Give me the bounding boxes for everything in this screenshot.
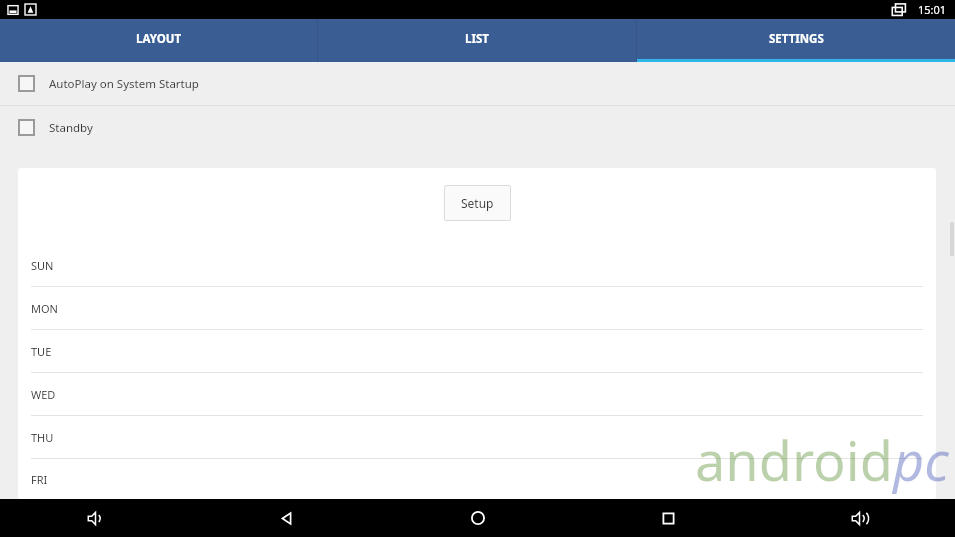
staticText: MON xyxy=(31,301,58,316)
button[interactable]: Home xyxy=(382,499,573,537)
staticText: LAYOUT xyxy=(136,31,182,47)
staticText: AutoPlay on System Startup xyxy=(49,76,199,92)
button[interactable]: SETTINGS xyxy=(637,19,955,62)
button[interactable]: Volume down xyxy=(0,499,191,537)
button[interactable]: FRI xyxy=(18,459,936,499)
button[interactable]: MON xyxy=(18,287,936,329)
button[interactable]: WED xyxy=(18,373,936,415)
staticText: android xyxy=(695,423,893,497)
staticText: Standby xyxy=(49,120,93,136)
staticText: SUN xyxy=(31,258,54,273)
staticText: FRI xyxy=(31,472,48,487)
button[interactable]: SUN xyxy=(18,244,936,286)
button[interactable]: TUE xyxy=(18,330,936,372)
button[interactable]: THU xyxy=(18,416,936,458)
staticText: Setup xyxy=(461,195,494,211)
staticText: LIST xyxy=(465,31,489,47)
button[interactable]: LAYOUT xyxy=(0,19,317,62)
button[interactable]: LIST xyxy=(318,19,636,62)
button[interactable]: Volume up xyxy=(764,499,955,537)
button[interactable]: AutoPlay on System Startup xyxy=(0,62,955,105)
staticText: TUE xyxy=(31,344,52,359)
staticText: pc xyxy=(893,423,949,497)
button[interactable]: Recents xyxy=(573,499,764,537)
staticText: THU xyxy=(31,430,54,445)
button[interactable]: Setup xyxy=(444,185,511,221)
staticText: WED xyxy=(31,387,56,402)
button[interactable]: Standby xyxy=(0,106,955,149)
staticText: 15:01 xyxy=(918,2,947,17)
staticText: SETTINGS xyxy=(769,31,824,47)
button[interactable]: Back xyxy=(191,499,382,537)
